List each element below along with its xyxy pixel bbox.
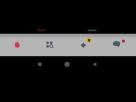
button[interactable]: Messages (102, 34, 136, 56)
button[interactable]: Discover (0, 34, 34, 56)
button[interactable]: Recent apps (30, 56, 50, 72)
button[interactable]: Back (85, 56, 105, 72)
button[interactable]: Explore (34, 34, 68, 56)
button[interactable]: Home (57, 56, 77, 72)
button[interactable]: Likes (68, 34, 102, 56)
